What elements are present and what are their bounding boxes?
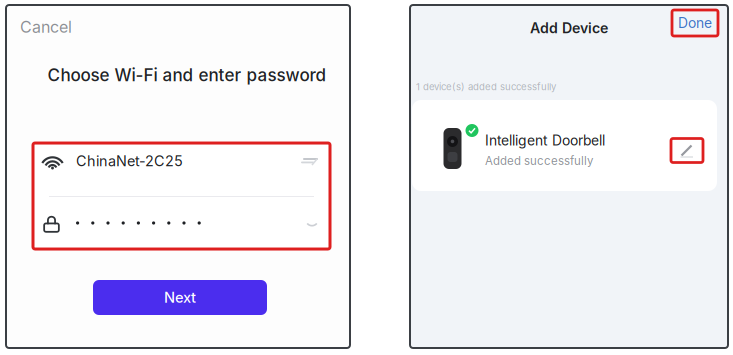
- button[interactable]: Cancel: [18, 16, 74, 38]
- staticText: Add Device: [530, 19, 608, 36]
- staticText: ChinaNet-2C25: [76, 152, 183, 170]
- button[interactable]: ChinaNet-2C25: [33, 143, 330, 196]
- button[interactable]: Edit device: [671, 138, 703, 162]
- staticText: Added successfully: [485, 154, 593, 168]
- staticText: Intelligent Doorbell: [485, 132, 605, 149]
- staticText: Choose Wi-Fi and enter password: [47, 65, 326, 85]
- button[interactable]: [33, 197, 330, 249]
- button[interactable]: Next: [93, 280, 267, 315]
- staticText: Cancel: [20, 17, 72, 37]
- staticText: Done: [678, 15, 712, 31]
- staticText: 1 device(s) added successfully: [416, 81, 556, 93]
- button[interactable]: Done: [672, 10, 718, 36]
- staticText: Next: [164, 289, 196, 306]
